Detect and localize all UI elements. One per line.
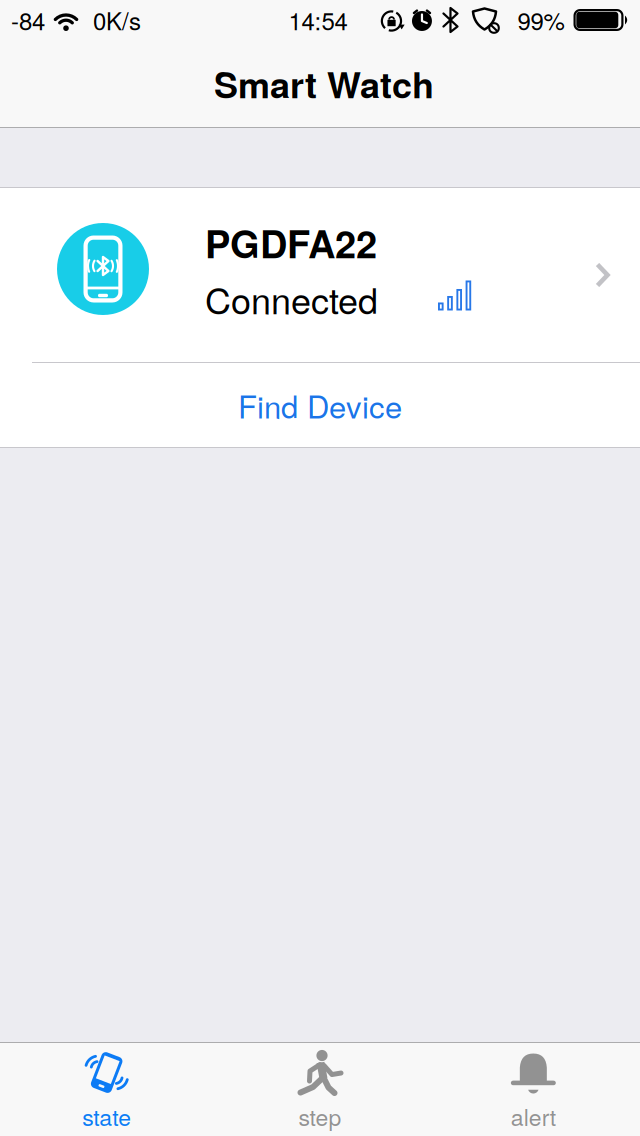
- staticText: 14:54: [288, 3, 347, 37]
- staticText: PGDFA22: [205, 215, 377, 270]
- staticText: 99%: [517, 3, 564, 37]
- button[interactable]: PGDFA22: [0, 188, 640, 362]
- staticText: Find Device: [238, 383, 402, 427]
- staticText: 0K/s: [93, 3, 141, 37]
- button[interactable]: Find Device: [0, 363, 640, 447]
- button[interactable]: alert: [427, 1043, 640, 1136]
- button[interactable]: step: [213, 1043, 427, 1136]
- button[interactable]: state: [0, 1043, 213, 1136]
- staticText: step: [298, 1099, 341, 1132]
- staticText: -84: [11, 3, 45, 37]
- staticText: Connected: [205, 273, 378, 324]
- staticText: Smart Watch: [214, 58, 434, 109]
- staticText: alert: [511, 1099, 556, 1132]
- staticText: state: [82, 1099, 131, 1132]
